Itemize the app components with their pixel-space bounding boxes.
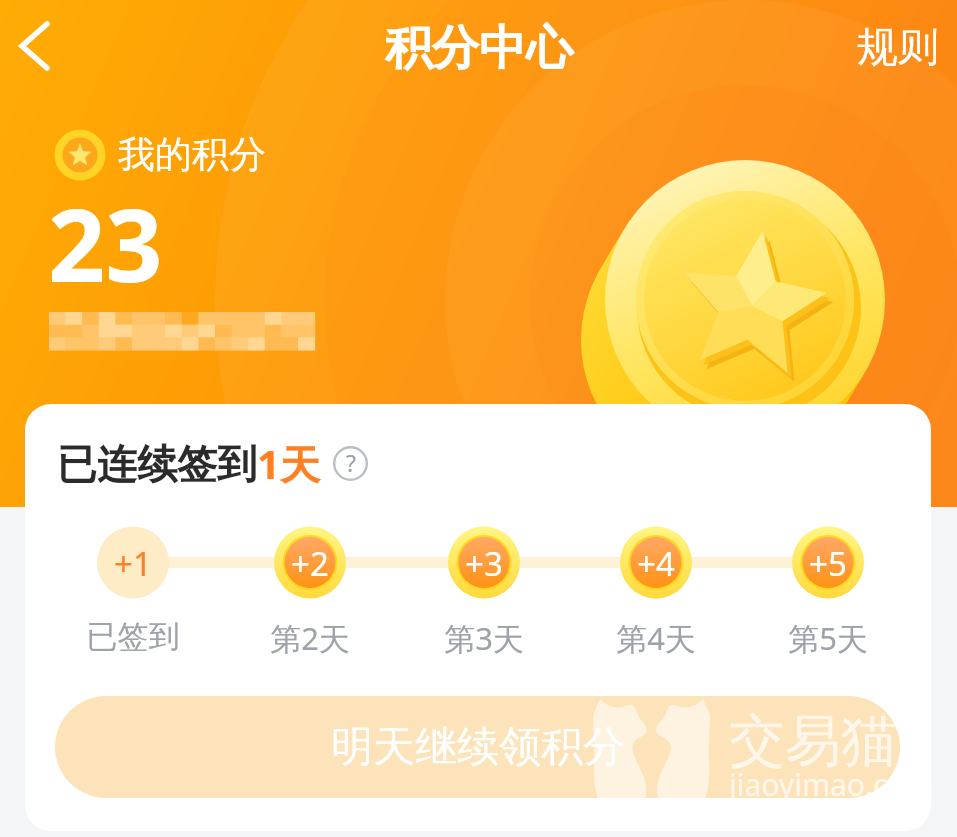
staticText: 我的积分 bbox=[118, 131, 266, 178]
staticText: ? bbox=[346, 447, 356, 478]
staticText: jiaoyimao.com bbox=[729, 764, 934, 805]
staticText: 第4天 bbox=[576, 617, 736, 659]
button[interactable]: +2 bbox=[250, 526, 370, 600]
staticText: 第3天 bbox=[404, 617, 564, 659]
staticText: 交易猫 bbox=[729, 706, 897, 777]
staticText: 1天 bbox=[257, 436, 320, 491]
button[interactable]: +3 bbox=[424, 526, 544, 600]
button[interactable]: 明天继续领积分 bbox=[55, 696, 900, 798]
staticText: 规则 bbox=[857, 22, 939, 74]
button[interactable]: +5 bbox=[768, 526, 888, 600]
button[interactable]: 规则 bbox=[835, 8, 957, 84]
button[interactable]: +4 bbox=[596, 526, 716, 600]
staticText: +2 bbox=[291, 541, 329, 586]
staticText: +3 bbox=[465, 541, 503, 586]
staticText: 明天继续领积分 bbox=[331, 721, 625, 774]
staticText: 第5天 bbox=[748, 617, 908, 659]
staticText: +5 bbox=[809, 541, 847, 586]
button[interactable]: Back bbox=[0, 0, 92, 92]
button[interactable]: Help bbox=[333, 446, 368, 481]
staticText: +1 bbox=[114, 541, 152, 586]
staticText: 23 bbox=[48, 175, 163, 311]
button[interactable]: +1 bbox=[73, 526, 193, 600]
staticText: 第2天 bbox=[230, 617, 390, 659]
staticText: 已签到 bbox=[53, 617, 213, 656]
staticText: 已连续签到 bbox=[57, 439, 257, 489]
staticText: 积分中心 bbox=[385, 19, 573, 78]
staticText: +4 bbox=[637, 541, 675, 586]
